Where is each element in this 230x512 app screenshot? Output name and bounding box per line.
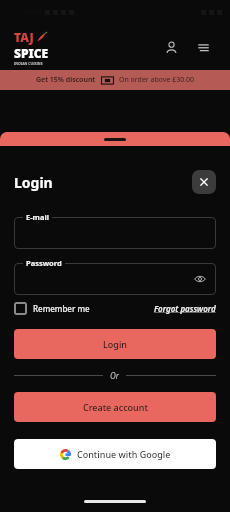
- staticText: Remember me: [33, 303, 90, 314]
- staticText: Get 15% discount: [36, 75, 96, 85]
- staticText: Password: [26, 258, 62, 268]
- button[interactable]: Get 15% discount: [0, 70, 230, 90]
- staticText: E-mail: [26, 212, 49, 222]
- button[interactable]: Remember me: [14, 302, 90, 315]
- button[interactable]: [14, 217, 216, 249]
- button[interactable]: Login: [14, 329, 216, 359]
- staticText: TAJ: [14, 29, 34, 45]
- button[interactable]: Forgot password: [154, 303, 216, 314]
- button[interactable]: Continue with Google: [14, 439, 216, 469]
- button[interactable]: Create account: [14, 392, 216, 422]
- staticText: Or: [110, 370, 119, 381]
- staticText: INDIAN CUISINE: [14, 61, 43, 66]
- staticText: SPICE: [14, 45, 49, 61]
- button[interactable]: Account: [158, 34, 184, 60]
- button[interactable]: Close: [192, 170, 216, 194]
- button[interactable]: Show password: [192, 271, 208, 287]
- staticText: Login: [14, 173, 53, 192]
- staticText: Create account: [83, 401, 148, 413]
- staticText: On order above £30.00: [119, 75, 195, 85]
- staticText: Login: [103, 338, 127, 350]
- staticText: Continue with Google: [77, 448, 171, 460]
- button[interactable]: Menu: [190, 34, 216, 60]
- button[interactable]: [14, 263, 216, 295]
- staticText: Forgot password: [154, 303, 216, 314]
